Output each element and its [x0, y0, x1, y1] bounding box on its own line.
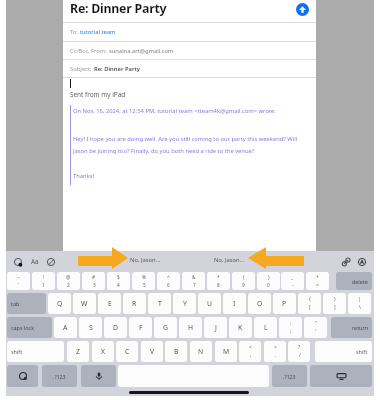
button[interactable]: ! — [32, 272, 55, 290]
staticText: 9 — [242, 282, 245, 289]
staticText: Q — [57, 299, 63, 308]
button[interactable]: Send — [296, 3, 309, 16]
button[interactable]: W — [73, 293, 96, 314]
button[interactable]: ~ — [7, 272, 30, 290]
staticText: F — [139, 323, 143, 332]
button[interactable]: C — [116, 341, 138, 362]
button[interactable]: F — [129, 317, 152, 338]
button[interactable]: > — [264, 341, 286, 362]
button[interactable]: O — [248, 293, 271, 314]
button[interactable]: U — [198, 293, 221, 314]
staticText: Re: Dinner Party — [94, 65, 140, 73]
button[interactable]: ^ — [157, 272, 180, 290]
button[interactable]: caps lock — [7, 317, 52, 338]
button[interactable]: : — [279, 317, 302, 338]
button[interactable]: Aa — [29, 256, 40, 267]
button[interactable]: } — [323, 293, 346, 314]
button[interactable]: + — [306, 272, 329, 290]
staticText: ( — [243, 274, 245, 281]
staticText: , — [250, 352, 252, 359]
staticText: S — [89, 323, 93, 332]
staticText: I — [233, 299, 236, 308]
staticText: Hey! I hope you are doing well. Are you … — [73, 135, 298, 154]
button[interactable]: < — [239, 341, 261, 362]
button[interactable]: # — [82, 272, 105, 290]
button[interactable]: Hide keyboard — [310, 365, 372, 387]
button[interactable]: No, Jason... — [130, 256, 161, 264]
button[interactable]: shift — [315, 341, 372, 362]
button[interactable]: K — [229, 317, 252, 338]
staticText: Re: Dinner Party — [70, 0, 167, 17]
button[interactable]: Cc/Bcc, From: — [63, 41, 316, 60]
button[interactable]: Y — [173, 293, 196, 314]
button[interactable]: Subject: — [63, 59, 316, 78]
button[interactable]: B — [165, 341, 187, 362]
staticText: 1 — [42, 282, 45, 289]
button[interactable]: No, Jason... — [214, 256, 245, 264]
button[interactable]: @ — [57, 272, 80, 290]
button[interactable]: .?123 — [272, 365, 307, 387]
staticText: Cc/Bcc, From: — [70, 47, 109, 55]
button[interactable]: Emoji — [12, 256, 23, 267]
button[interactable]: delete — [336, 272, 372, 290]
button[interactable]: Z — [67, 341, 89, 362]
button[interactable]: * — [207, 272, 230, 290]
button[interactable]: Q — [48, 293, 71, 314]
staticText: * — [217, 274, 220, 281]
button[interactable]: P — [273, 293, 296, 314]
staticText: No, Jason... — [214, 256, 245, 264]
button[interactable]: Markup tools — [356, 256, 367, 267]
staticText: N — [198, 347, 204, 356]
staticText: Aa — [31, 257, 39, 266]
button[interactable]: H — [179, 317, 202, 338]
staticText: .?123 — [283, 373, 296, 380]
button[interactable]: T — [148, 293, 171, 314]
staticText: 5 — [143, 282, 146, 289]
button[interactable]: J — [204, 317, 227, 338]
button[interactable]: G — [154, 317, 177, 338]
button[interactable]: Dictate — [81, 365, 116, 387]
button[interactable]: ( — [232, 272, 255, 290]
button[interactable]: M — [215, 341, 237, 362]
button[interactable]: Attach file — [340, 256, 351, 267]
button[interactable]: % — [132, 272, 155, 290]
button[interactable]: .?123 — [42, 365, 77, 387]
button[interactable]: X — [92, 341, 114, 362]
button[interactable]: ) — [257, 272, 280, 290]
button[interactable]: R — [123, 293, 146, 314]
staticText: Z — [76, 347, 80, 356]
staticText: - — [292, 282, 294, 289]
button[interactable]: & — [182, 272, 205, 290]
button[interactable]: To: — [63, 22, 316, 41]
staticText: tab — [11, 300, 20, 307]
staticText: W — [81, 299, 88, 308]
staticText: P — [282, 299, 287, 308]
button[interactable]: I — [223, 293, 246, 314]
button[interactable]: S — [79, 317, 102, 338]
button[interactable]: E — [98, 293, 121, 314]
button[interactable]: | — [348, 293, 371, 314]
button[interactable]: { — [298, 293, 321, 314]
staticText: 6 — [167, 282, 170, 289]
button[interactable]: $ — [107, 272, 130, 290]
button[interactable]: A — [54, 317, 77, 338]
staticText: C — [125, 347, 130, 356]
button[interactable]: ? — [288, 341, 310, 362]
button[interactable]: return — [331, 317, 372, 338]
staticText: ' — [315, 328, 317, 335]
button[interactable]: V — [141, 341, 163, 362]
button[interactable]: N — [190, 341, 212, 362]
staticText: V — [150, 347, 155, 356]
staticText: X — [101, 347, 105, 356]
button[interactable]: D — [104, 317, 127, 338]
button[interactable]: Emoji — [7, 365, 38, 387]
button[interactable]: " — [304, 317, 327, 338]
button[interactable]: _ — [281, 272, 304, 290]
button[interactable]: Markup — [45, 256, 56, 267]
staticText: ) — [268, 274, 270, 281]
button[interactable]: tab — [7, 293, 46, 314]
button[interactable]: shift — [7, 341, 64, 362]
button[interactable]: L — [254, 317, 277, 338]
staticText: E — [108, 299, 112, 308]
